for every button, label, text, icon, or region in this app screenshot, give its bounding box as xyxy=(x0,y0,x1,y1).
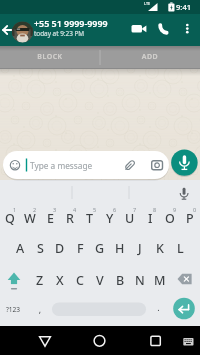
button[interactable] xyxy=(3,151,169,179)
staticText: H xyxy=(115,240,125,257)
staticText: Q xyxy=(5,210,15,227)
staticText: . xyxy=(152,301,165,313)
button[interactable]: U xyxy=(120,209,140,227)
staticText: 3 xyxy=(53,206,57,213)
staticText: Z xyxy=(36,272,44,289)
staticText: U xyxy=(125,210,135,227)
button[interactable] xyxy=(4,266,26,292)
staticText: +55 51 9999-9999 xyxy=(34,17,144,29)
staticText: F xyxy=(77,240,84,257)
staticText: today at 9:23 PM xyxy=(34,29,114,38)
button[interactable]: N xyxy=(130,271,150,289)
button[interactable]: X xyxy=(50,271,70,289)
button[interactable]: G xyxy=(90,239,110,257)
staticText: Type a message xyxy=(30,160,100,171)
button[interactable] xyxy=(52,296,146,316)
button[interactable]: , xyxy=(34,301,46,317)
button[interactable]: O xyxy=(160,209,180,227)
button[interactable]: R xyxy=(60,209,80,227)
staticText: E xyxy=(47,210,54,227)
staticText: D xyxy=(55,240,65,257)
staticText: 9 xyxy=(173,206,177,213)
button[interactable]: . xyxy=(152,299,165,315)
button[interactable]: S xyxy=(30,239,50,257)
button[interactable] xyxy=(178,16,200,44)
staticText: LTE xyxy=(144,1,154,6)
button[interactable] xyxy=(154,16,178,44)
staticText: K xyxy=(156,240,164,257)
staticText: N xyxy=(135,272,145,289)
staticText: 2 xyxy=(33,206,37,213)
staticText: 5 xyxy=(93,206,97,213)
staticText: P xyxy=(186,210,194,227)
button[interactable] xyxy=(171,149,198,176)
staticText: I xyxy=(148,210,153,227)
staticText: L xyxy=(177,240,184,257)
button[interactable] xyxy=(85,328,115,354)
button[interactable]: Y xyxy=(100,209,120,227)
button[interactable] xyxy=(128,16,150,44)
button[interactable] xyxy=(0,14,14,46)
staticText: W xyxy=(24,210,36,227)
staticText: 0 xyxy=(193,206,197,213)
staticText: T xyxy=(86,210,94,227)
staticText: 4 xyxy=(73,206,77,213)
staticText: B xyxy=(116,272,125,289)
button[interactable]: B xyxy=(110,271,130,289)
button[interactable]: M xyxy=(150,271,170,289)
button[interactable] xyxy=(173,297,197,321)
button[interactable] xyxy=(140,328,170,354)
staticText: ADD xyxy=(100,52,200,62)
staticText: S xyxy=(37,240,44,257)
staticText: Y xyxy=(106,210,114,227)
button[interactable]: C xyxy=(70,271,90,289)
button[interactable]: A xyxy=(10,239,30,257)
button[interactable] xyxy=(174,266,198,292)
button[interactable]: T xyxy=(80,209,100,227)
staticText: R xyxy=(66,210,74,227)
staticText: A xyxy=(16,240,25,257)
staticText: J xyxy=(138,240,142,257)
button[interactable] xyxy=(178,330,198,352)
button[interactable]: D xyxy=(50,239,70,257)
staticText: M xyxy=(154,272,166,289)
staticText: 9:41 xyxy=(176,2,198,12)
button[interactable]: W xyxy=(20,209,40,227)
button[interactable]: F xyxy=(70,239,90,257)
staticText: 8 xyxy=(153,206,157,213)
button[interactable]: BLOCK xyxy=(0,46,100,68)
button[interactable]: E xyxy=(40,209,60,227)
button[interactable]: I xyxy=(140,209,160,227)
staticText: 6 xyxy=(113,206,117,213)
button[interactable]: L xyxy=(170,239,190,257)
staticText: , xyxy=(34,303,46,315)
button[interactable]: H xyxy=(110,239,130,257)
staticText: V xyxy=(96,272,104,289)
staticText: G xyxy=(95,240,105,257)
staticText: O xyxy=(165,210,175,227)
staticText: C xyxy=(76,272,84,289)
staticText: 1 xyxy=(13,206,17,213)
button[interactable]: J xyxy=(130,239,150,257)
staticText: X xyxy=(56,272,64,289)
button[interactable]: V xyxy=(90,271,110,289)
button[interactable]: ?123 xyxy=(2,303,24,316)
staticText: 7 xyxy=(133,206,137,213)
button[interactable]: ADD xyxy=(100,46,200,68)
button[interactable] xyxy=(30,328,60,354)
button[interactable] xyxy=(12,20,34,44)
staticText: ?123 xyxy=(2,305,24,314)
staticText: BLOCK xyxy=(0,52,100,62)
button[interactable]: K xyxy=(150,239,170,257)
button[interactable]: Q xyxy=(0,209,20,227)
button[interactable]: P xyxy=(180,209,200,227)
button[interactable]: Z xyxy=(30,271,50,289)
